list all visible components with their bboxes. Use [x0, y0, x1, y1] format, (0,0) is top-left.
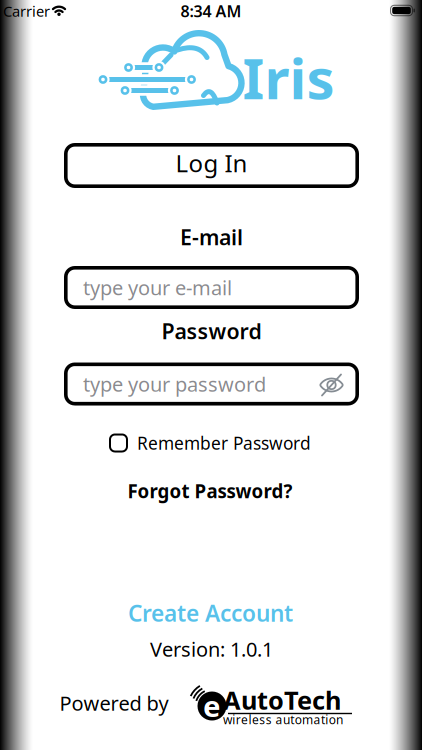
staticText: Carrier [3, 1, 50, 21]
staticText: E-mail [180, 223, 243, 251]
staticText: Password [161, 317, 261, 345]
staticText: Remember Password [137, 431, 311, 454]
staticText: e [203, 686, 221, 725]
staticText: type your password [83, 371, 266, 397]
staticText: AutoTech [223, 683, 341, 717]
staticText: Iris [242, 40, 334, 115]
staticText: Powered by [59, 690, 168, 716]
button[interactable]: Log In [64, 143, 359, 188]
button[interactable]: Create Account [128, 598, 293, 628]
button[interactable]: Password [64, 362, 359, 405]
staticText: Version: 1.0.1 [150, 636, 273, 662]
staticText: Forgot Password? [127, 479, 292, 503]
staticText: type your e-mail [83, 274, 232, 301]
staticText: Create Account [128, 598, 293, 628]
button[interactable]: Show password [319, 372, 344, 397]
staticText: 8:34 AM [180, 0, 241, 22]
button[interactable]: Remember Password [109, 431, 311, 454]
button[interactable]: Forgot Password? [127, 479, 292, 503]
staticText: Log In [175, 147, 247, 179]
button[interactable]: E-mail [64, 266, 359, 309]
staticText: wireless automation [223, 711, 343, 727]
